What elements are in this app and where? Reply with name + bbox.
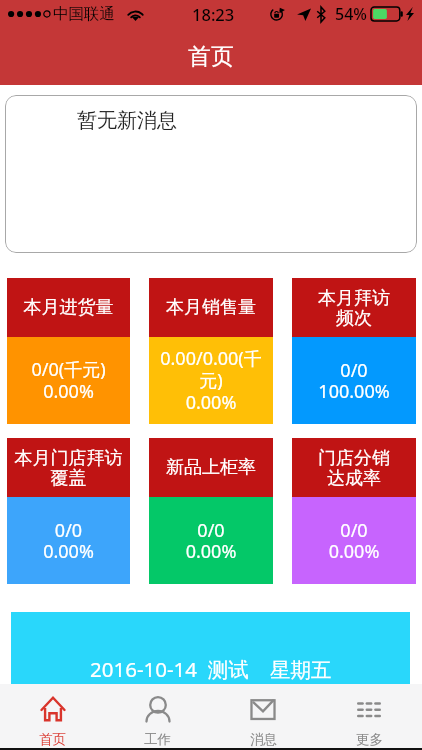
button[interactable]: 本月门店拜访 覆盖 [7, 438, 130, 584]
staticText: 本月销售量 [149, 296, 273, 319]
staticText: 0/0 0.00% [149, 518, 273, 564]
button[interactable]: 本月销售量 [149, 278, 273, 424]
staticText: 2016-10-14 测试 星期五 [90, 655, 332, 683]
staticText: 0/0 100.00% [292, 358, 416, 404]
staticText: 0/0 0.00% [292, 518, 416, 564]
staticText: 54% [335, 3, 367, 25]
staticText: 暂无新消息 [77, 108, 177, 133]
staticText: 首页 [188, 42, 234, 71]
button[interactable]: 暂无新消息 [5, 95, 417, 253]
button[interactable]: 本月进货量 [7, 278, 130, 424]
button[interactable]: 首页 [0, 684, 105, 748]
button[interactable]: 本月拜访 频次 [292, 278, 416, 424]
staticText: 本月进货量 [7, 296, 130, 319]
staticText: 消息 [250, 731, 277, 748]
staticText: 0.00/0.00(千 元) 0.00% [149, 346, 273, 415]
staticText: 0/0(千元) 0.00% [7, 357, 130, 404]
staticText: 工作 [144, 731, 171, 748]
staticText: 新品上柜率 [149, 456, 273, 479]
staticText: 更多 [356, 731, 383, 748]
button[interactable]: 2016-10-14 测试 星期五 [11, 612, 410, 684]
button[interactable]: 工作 [105, 684, 210, 748]
staticText: 本月门店拜访 覆盖 [7, 447, 130, 489]
button[interactable]: 更多 [316, 684, 422, 748]
staticText: 门店分销 达成率 [292, 447, 416, 489]
button[interactable]: 消息 [210, 684, 316, 748]
staticText: 0/0 0.00% [7, 518, 130, 564]
button[interactable]: 门店分销 达成率 [292, 438, 416, 584]
staticText: 中国联通 [53, 4, 115, 24]
button[interactable]: 新品上柜率 [149, 438, 273, 584]
staticText: 首页 [39, 731, 66, 748]
staticText: 18:23 [192, 3, 235, 25]
staticText: 本月拜访 频次 [292, 287, 416, 329]
